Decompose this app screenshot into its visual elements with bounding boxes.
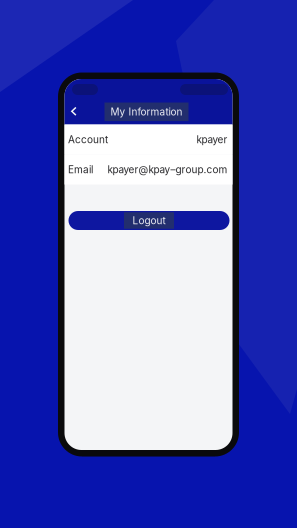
staticText: kpayer@kpay–group.com xyxy=(107,163,227,176)
staticText: kpayer xyxy=(196,133,227,146)
button[interactable]: Logout xyxy=(68,211,229,230)
staticText: Logout xyxy=(132,214,165,227)
staticText: Account xyxy=(68,133,108,146)
staticText: My Information xyxy=(110,106,182,118)
staticText: Email xyxy=(68,163,93,176)
button[interactable]: Back xyxy=(64,100,84,122)
